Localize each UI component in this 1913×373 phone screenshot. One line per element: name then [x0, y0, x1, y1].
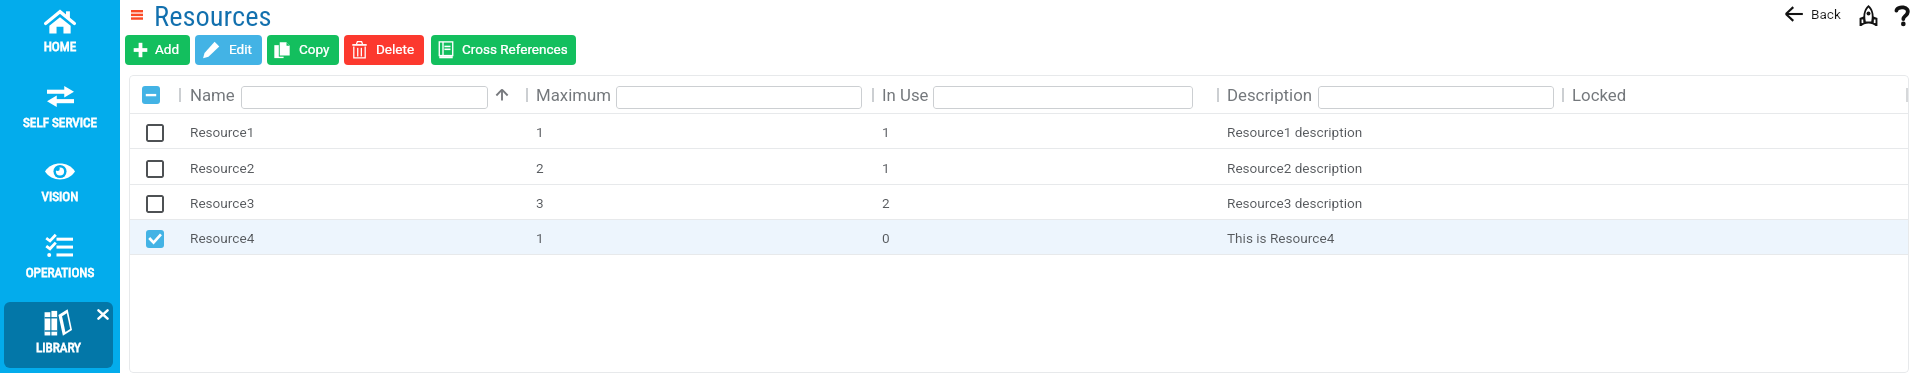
staticText: VISION: [0, 189, 120, 204]
staticText: 1: [536, 230, 544, 246]
staticText: 1: [882, 124, 890, 140]
staticText: Name: [190, 85, 235, 105]
other: Menu: [131, 10, 143, 21]
staticText: 0: [882, 230, 890, 246]
staticText: Cross References: [462, 41, 568, 57]
staticText: 2: [882, 195, 890, 211]
button[interactable]: Add: [125, 35, 190, 65]
staticText: Back: [1811, 6, 1841, 22]
staticText: Add: [155, 41, 180, 57]
button[interactable]: [933, 86, 1193, 109]
staticText: Locked: [1572, 85, 1627, 105]
staticText: 2: [536, 160, 544, 176]
button[interactable]: [241, 86, 488, 109]
button[interactable]: Cross References: [431, 35, 576, 65]
staticText: LIBRARY: [4, 340, 113, 355]
button[interactable]: Close Library: [4, 302, 113, 368]
button[interactable]: Help: [1895, 5, 1911, 26]
button[interactable]: Menu: [130, 1, 290, 34]
staticText: Description: [1227, 85, 1313, 105]
staticText: This is Resource4: [1227, 230, 1335, 246]
button[interactable]: SELF SERVICE: [0, 78, 120, 133]
staticText: In Use: [882, 85, 929, 105]
button[interactable]: OPERATIONS: [0, 226, 120, 283]
staticText: Resource3: [190, 195, 255, 211]
staticText: Delete: [376, 41, 415, 57]
button[interactable]: Delete: [344, 35, 424, 65]
staticText: Resource4: [190, 230, 255, 246]
button[interactable]: Sort ascending: [496, 89, 508, 101]
button[interactable]: Resource2: [129, 150, 1909, 185]
staticText: Resource1: [190, 124, 255, 140]
button[interactable]: HOME: [0, 2, 120, 57]
staticText: SELF SERVICE: [0, 115, 120, 130]
staticText: Resource1 description: [1227, 124, 1363, 140]
staticText: Copy: [299, 41, 330, 57]
staticText: 1: [536, 124, 544, 140]
button[interactable]: What's new: [1859, 5, 1878, 26]
button[interactable]: Resource1: [129, 114, 1909, 149]
staticText: Resources: [154, 0, 272, 33]
button[interactable]: Edit: [195, 35, 262, 65]
button[interactable]: Resource4: [129, 220, 1909, 255]
staticText: 1: [882, 160, 890, 176]
button[interactable]: Resource3: [129, 185, 1909, 220]
button[interactable]: Back: [1785, 4, 1841, 24]
staticText: Maximum: [536, 85, 611, 105]
staticText: OPERATIONS: [0, 265, 120, 280]
staticText: Resource2: [190, 160, 255, 176]
button[interactable]: Copy: [267, 35, 339, 65]
staticText: HOME: [0, 39, 120, 54]
staticText: 3: [536, 195, 544, 211]
button[interactable]: VISION: [0, 152, 120, 207]
button[interactable]: Select all: [142, 86, 160, 104]
button[interactable]: [616, 86, 862, 109]
staticText: Edit: [229, 41, 252, 57]
staticText: Resource2 description: [1227, 160, 1363, 176]
staticText: Resource3 description: [1227, 195, 1363, 211]
other: Close Library: [97, 309, 109, 320]
button[interactable]: [1318, 86, 1554, 109]
